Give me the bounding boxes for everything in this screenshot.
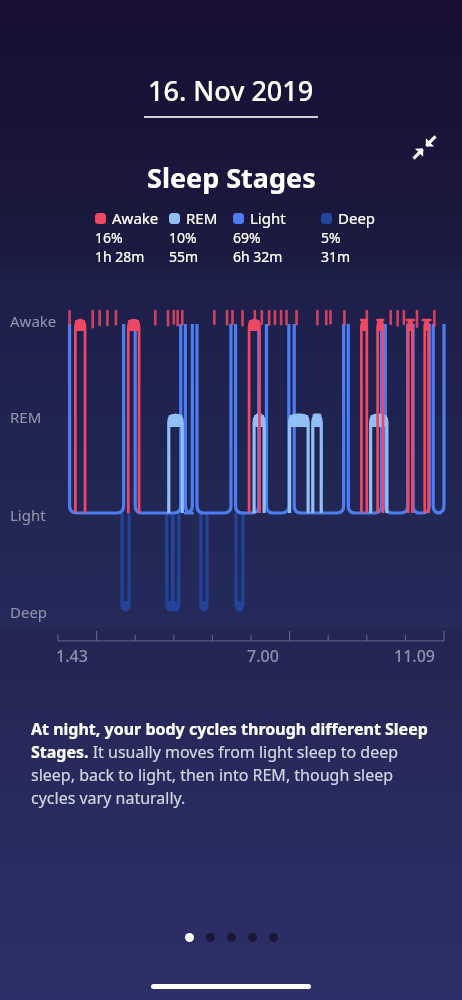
staticText: At night, your body cycles through diffe… [31, 718, 431, 809]
staticText: Deep [338, 208, 376, 228]
staticText: 55m [169, 247, 199, 266]
button[interactable] [269, 933, 278, 942]
button[interactable] [227, 933, 236, 942]
button[interactable]: Awake [95, 208, 169, 266]
staticText: 16. Nov 2019 [148, 72, 314, 109]
button[interactable]: Light [233, 208, 321, 266]
staticText: Light [10, 505, 46, 525]
staticText: Awake [10, 311, 57, 331]
staticText: 1.43 [56, 645, 88, 667]
button[interactable] [185, 933, 194, 942]
staticText: Light [250, 208, 286, 228]
staticText: 11.09 [394, 645, 435, 667]
staticText: Deep [10, 602, 48, 622]
button[interactable]: REM [169, 208, 233, 266]
staticText: Awake [112, 208, 159, 228]
button[interactable]: Collapse [401, 124, 447, 170]
button[interactable] [248, 933, 257, 942]
staticText: 16% [95, 228, 123, 247]
staticText: REM [10, 407, 42, 427]
staticText: 69% [233, 228, 261, 247]
staticText: 1h 28m [95, 247, 145, 266]
staticText: 6h 32m [233, 247, 283, 266]
button[interactable] [206, 933, 215, 942]
staticText: Sleep Stages [147, 159, 316, 196]
staticText: 5% [321, 228, 341, 247]
staticText: 10% [169, 228, 197, 247]
staticText: 7.00 [247, 645, 279, 667]
staticText: REM [186, 208, 218, 228]
button[interactable]: Deep [321, 208, 379, 266]
staticText: 31m [321, 247, 351, 266]
button[interactable]: 16. Nov 2019 [144, 72, 318, 118]
